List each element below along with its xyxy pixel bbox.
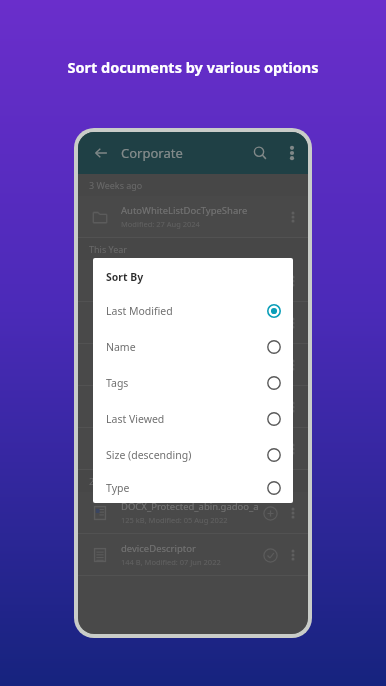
staticText: Last Viewed	[106, 412, 165, 426]
button[interactable]: Scanned_image_doc	[78, 428, 308, 469]
button[interactable]: Name	[93, 329, 293, 365]
button[interactable]: Item options	[284, 356, 302, 374]
button[interactable]: Item options	[284, 314, 302, 332]
staticText: 2.4 MB, Modified: 21 Apr 2023	[121, 409, 227, 419]
button[interactable]: Presentation_final	[78, 344, 308, 385]
staticText: Tags	[106, 376, 129, 390]
button[interactable]: Search	[247, 140, 273, 166]
button[interactable]: Item options	[284, 208, 302, 226]
staticText: Corporate	[121, 144, 183, 162]
staticText: Document_one_report	[121, 268, 222, 281]
staticText: This Year	[89, 243, 128, 255]
staticText: 210 kB, Modified: 12 Jun 2023	[121, 283, 225, 293]
button[interactable]: AutoWhiteListDocTypeShare	[78, 196, 308, 237]
button[interactable]: Selected	[260, 545, 280, 565]
button[interactable]: Selected	[260, 439, 280, 459]
staticText: DOCX_Protected_abin.gadoo_and10	[121, 500, 260, 513]
staticText: 370 kB, Modified: 18 Apr 2023	[121, 451, 226, 461]
staticText: AutoWhiteListDocTypeShare	[121, 204, 248, 217]
button[interactable]: deviceDescriptor	[78, 534, 308, 575]
button[interactable]: DOCX_Protected_abin.gadoo_and10	[78, 492, 308, 533]
staticText: Type	[106, 481, 130, 495]
staticText: 144 B, Modified: 07 Jun 2022	[121, 557, 221, 567]
staticText: Modified: 27 Aug 2024	[121, 219, 200, 229]
button[interactable]: More options	[279, 140, 305, 166]
staticText: Last Modified	[106, 304, 173, 318]
staticText: 3 Weeks ago	[89, 179, 143, 191]
staticText: deviceDescriptor	[121, 542, 196, 555]
button[interactable]: Add	[260, 503, 280, 523]
button[interactable]: Tags	[93, 365, 293, 401]
button[interactable]: Spreadsheet_data_v2	[78, 302, 308, 343]
staticText: Sort documents by various options	[16, 57, 370, 77]
staticText: 2 Years ago	[89, 475, 138, 487]
button[interactable]: Document_one_report	[78, 260, 308, 301]
staticText: Sort By	[106, 270, 144, 284]
staticText: Size (descending)	[106, 448, 192, 462]
button[interactable]: Item options	[284, 546, 302, 564]
staticText: Name	[106, 340, 136, 354]
button[interactable]: Item options	[284, 504, 302, 522]
button[interactable]: Item options	[284, 272, 302, 290]
button[interactable]: Last Modified	[93, 293, 293, 329]
staticText: 125 kB, Modified: 05 Aug 2022	[121, 515, 228, 525]
button[interactable]: Back	[88, 140, 114, 166]
button[interactable]: Item options	[284, 398, 302, 416]
button[interactable]: Type	[93, 473, 293, 503]
staticText: Spreadsheet_data_v2	[121, 310, 216, 323]
button[interactable]: Archive_backup_files	[78, 386, 308, 427]
button[interactable]: Item options	[284, 440, 302, 458]
button[interactable]: Last Viewed	[93, 401, 293, 437]
button[interactable]: Size (descending)	[93, 437, 293, 473]
